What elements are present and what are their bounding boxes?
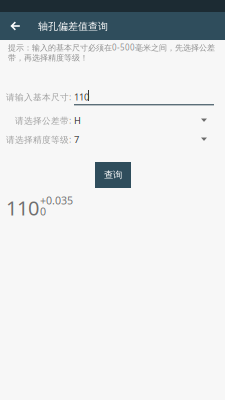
staticText: 7 xyxy=(74,133,79,146)
staticText: 110 xyxy=(6,194,39,221)
button[interactable]: Back xyxy=(0,12,30,40)
staticText: 查询 xyxy=(104,169,122,181)
staticText: +0.035 xyxy=(40,193,73,207)
staticText: 0 xyxy=(40,204,46,218)
staticText: 提示：输入的基本尺寸必须在0-500毫米之间，先选择公差带，再选择精度等级！ xyxy=(8,42,215,63)
staticText: 请选择公差带: xyxy=(15,115,71,126)
button[interactable]: 查询 xyxy=(95,162,131,188)
staticText: 轴孔偏差值查询 xyxy=(38,20,108,33)
staticText: 请选择精度等级: xyxy=(6,134,71,145)
button[interactable]: 请选择精度等级: xyxy=(0,130,225,149)
staticText: 请输入基本尺寸: xyxy=(6,91,71,103)
staticText: 110 xyxy=(74,91,89,103)
staticText: H xyxy=(74,114,81,127)
button[interactable]: 请选择公差带: xyxy=(0,111,225,130)
